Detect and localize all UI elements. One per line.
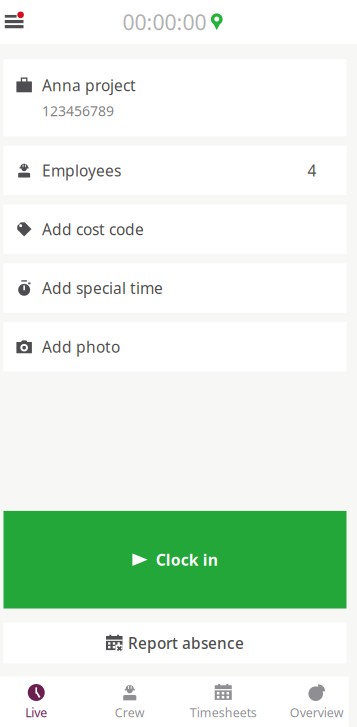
button[interactable]: Overview [270, 684, 357, 721]
staticText: Employees [42, 160, 121, 181]
staticText: Report absence [128, 633, 244, 653]
staticText: Crew [115, 704, 145, 721]
staticText: Anna project [42, 75, 136, 96]
staticText: Add photo [42, 336, 120, 357]
staticText: Overview [290, 704, 344, 721]
button[interactable]: Add photo [3, 322, 346, 371]
staticText: Add special time [42, 277, 163, 299]
button[interactable]: Crew [83, 684, 176, 721]
staticText: Timesheets [190, 704, 257, 721]
staticText: Add cost code [42, 219, 144, 240]
button[interactable]: Report absence [3, 622, 346, 663]
button[interactable]: Menu [0, 0, 37, 44]
button[interactable]: Clock in [3, 511, 346, 608]
staticText: 00:00:00 [122, 8, 206, 36]
button[interactable]: Anna project [3, 59, 346, 136]
button[interactable]: Employees [3, 146, 346, 195]
button[interactable]: Add special time [3, 263, 346, 313]
staticText: 4 [307, 160, 316, 181]
button[interactable]: Timesheets [176, 684, 270, 721]
staticText: 123456789 [42, 101, 114, 120]
staticText: Clock in [156, 549, 218, 570]
button[interactable]: Add cost code [3, 204, 346, 254]
button[interactable]: Live [0, 684, 83, 721]
staticText: Live [25, 704, 47, 721]
